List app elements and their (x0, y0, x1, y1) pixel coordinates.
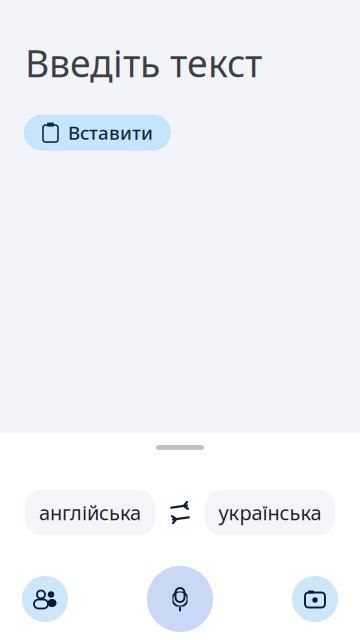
button[interactable]: Camera (292, 576, 338, 622)
staticText: Вставити (68, 120, 153, 145)
button[interactable]: українська (205, 490, 335, 535)
button[interactable]: Conversation (22, 576, 68, 622)
button[interactable]: Voice input (147, 566, 213, 632)
staticText: українська (218, 499, 321, 526)
button[interactable]: англійська (25, 490, 155, 535)
staticText: Введіть текст (25, 38, 262, 88)
button[interactable]: Вставити (24, 115, 171, 151)
staticText: англійська (39, 499, 141, 526)
button[interactable]: Swap languages (155, 490, 205, 535)
